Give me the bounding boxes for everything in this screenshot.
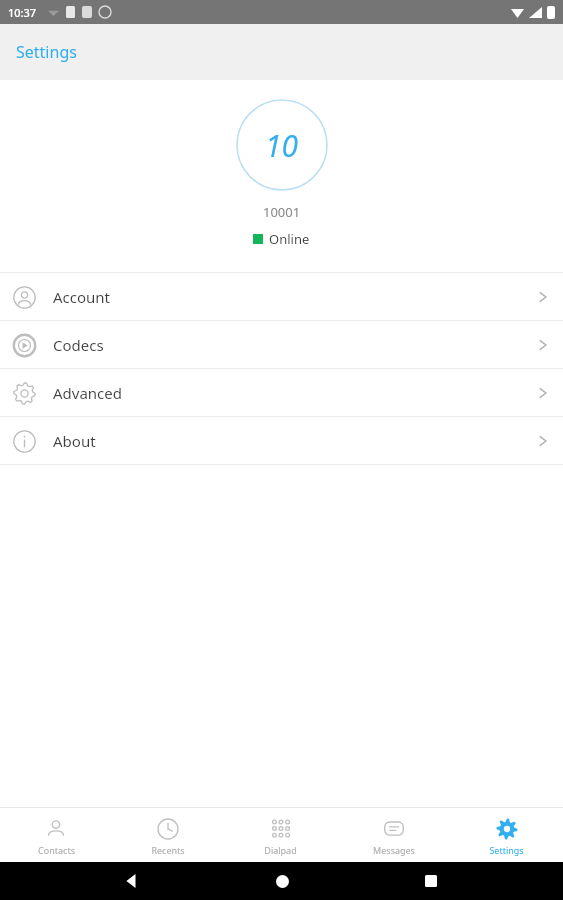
staticText: Online [269,230,310,248]
button[interactable]: Recents [112,807,224,862]
button[interactable]: 10 [236,99,328,191]
staticText: 10 [265,125,299,166]
button[interactable]: Codecs [0,321,563,368]
staticText: 10:37 [8,5,37,20]
staticText: About [53,431,96,451]
staticText: Advanced [53,383,123,403]
staticText: Recents [151,844,185,856]
staticText: Messages [373,844,415,856]
button[interactable]: Dialpad [224,807,337,862]
button[interactable]: Back [115,864,149,898]
button[interactable]: Messages [337,807,450,862]
staticText: Codecs [53,335,104,355]
button[interactable]: Contacts [0,807,112,862]
button[interactable]: Account [0,273,563,320]
staticText: Contacts [38,844,75,856]
staticText: Dialpad [264,844,297,856]
button[interactable]: Advanced [0,369,563,416]
staticText: 10001 [263,203,301,221]
staticText: Settings [16,41,77,63]
staticText: Settings [489,844,524,856]
staticText: Account [53,287,111,307]
button[interactable]: About [0,417,563,464]
button[interactable]: Settings [450,807,563,862]
button[interactable]: Recent apps [414,864,448,898]
button[interactable]: Home [265,864,299,898]
